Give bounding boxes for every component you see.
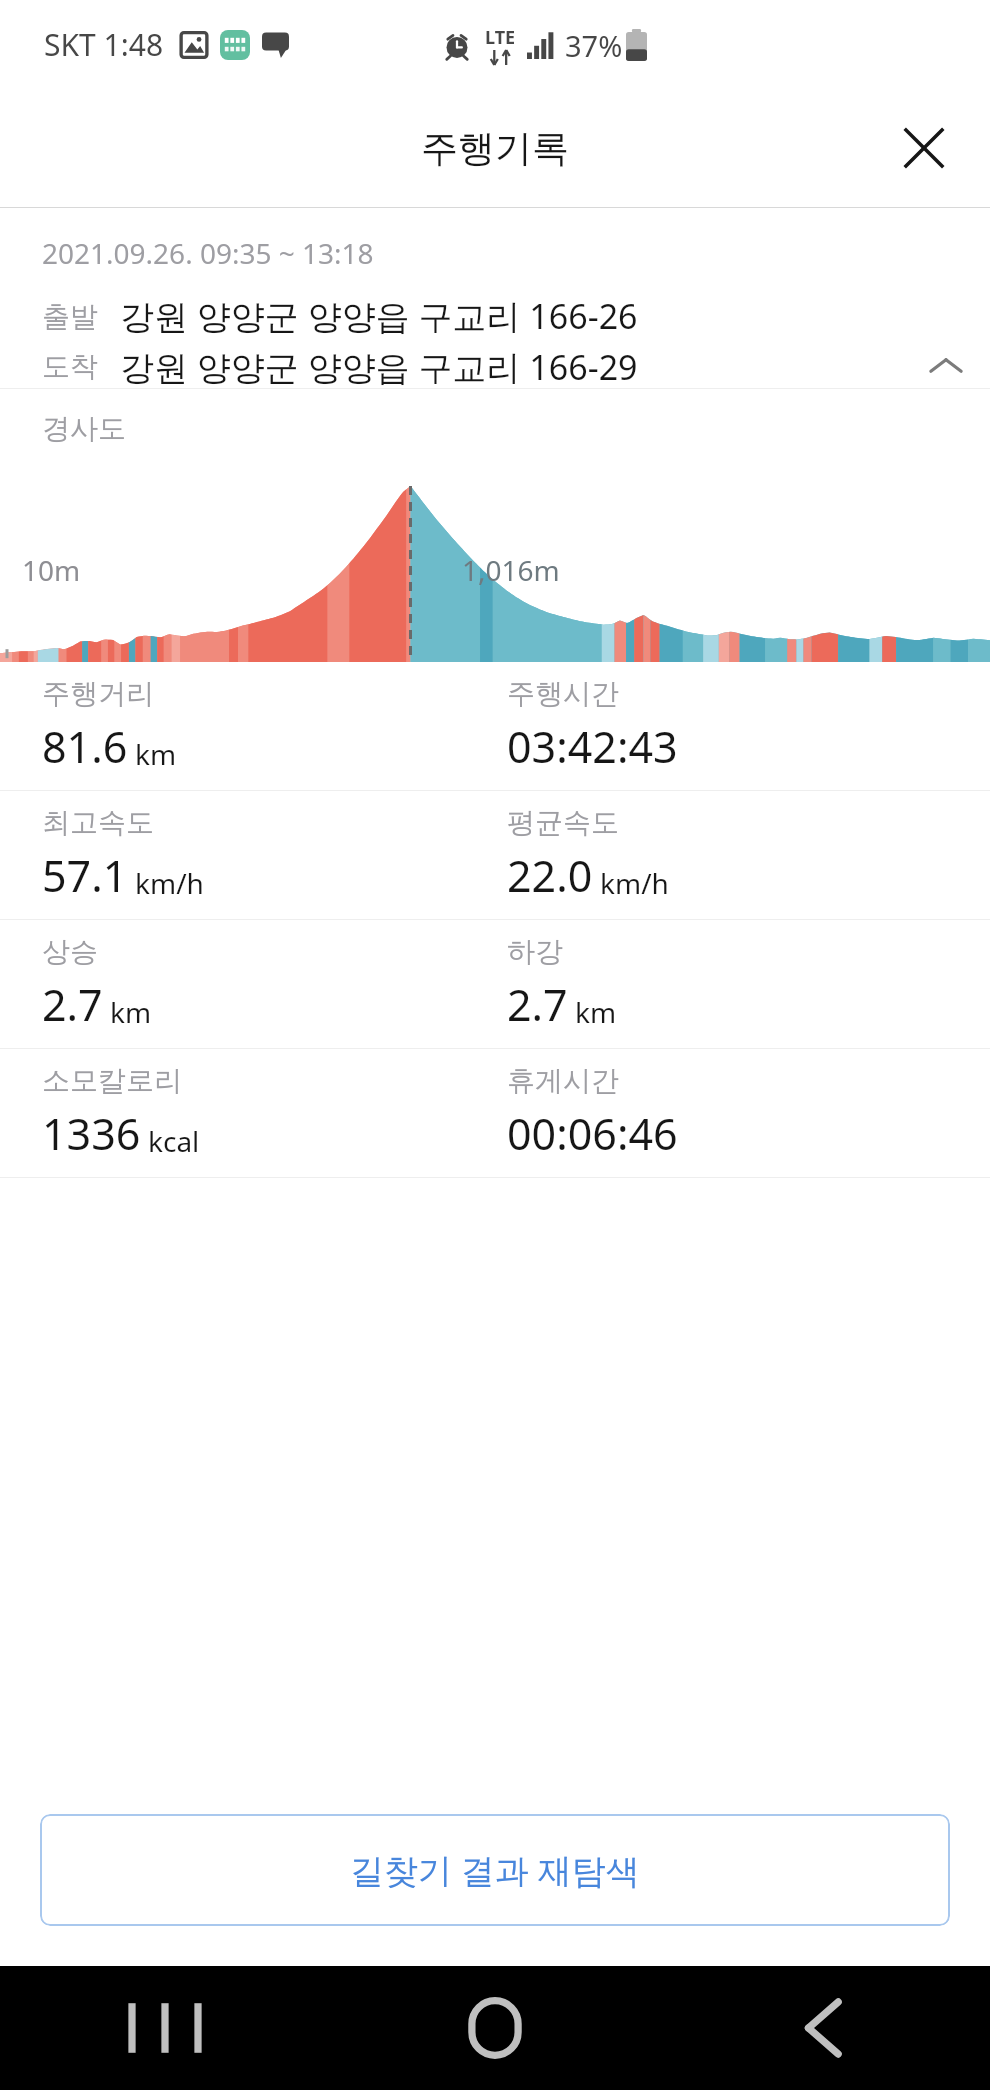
staticText: 길찾기 결과 재탐색 [350,1847,640,1893]
staticText: 22.0 [507,846,593,905]
staticText: 도착 [42,349,98,384]
staticText: LTE [485,25,516,50]
staticText: 상승 [42,934,98,969]
staticText: km [110,993,152,1031]
staticText: 주행시간 [507,676,619,711]
button[interactable]: 길찾기 결과 재탐색 [40,1814,950,1926]
staticText: 81.6 [42,717,128,776]
staticText: 하강 [507,934,563,969]
button[interactable]: 홈 [330,1966,660,2090]
staticText: 주행거리 [42,676,154,711]
staticText: 03:42:43 [507,717,678,776]
staticText: 1,016m [462,551,560,589]
staticText: kcal [148,1122,200,1160]
staticText: 경사도 [42,411,126,446]
staticText: 소모칼로리 [42,1063,182,1098]
staticText: 강원 양양군 양양읍 구교리 166-29 [120,344,638,388]
staticText: 10m [22,551,81,589]
staticText: km [135,735,177,773]
staticText: 출발 [42,299,98,334]
staticText: 최고속도 [42,805,154,840]
staticText: km/h [135,864,204,902]
button[interactable]: 2021.09.26. 09:35 ~ 13:18 [0,208,990,388]
button[interactable]: 최근 앱 [0,1966,330,2090]
staticText: 평균속도 [507,805,619,840]
staticText: 강원 양양군 양양읍 구교리 166-26 [120,293,638,339]
staticText: 2.7 [42,975,103,1034]
staticText: km/h [600,864,669,902]
staticText: 1336 [42,1104,141,1163]
staticText: 2021.09.26. 09:35 ~ 13:18 [42,234,374,272]
staticText: 37% [565,26,623,65]
staticText: 주행기록 [421,125,569,172]
staticText: 휴게시간 [507,1063,619,1098]
staticText: 00:06:46 [507,1104,678,1163]
staticText: 57.1 [42,846,128,905]
button[interactable]: 닫기 [884,108,964,188]
staticText: km [575,993,617,1031]
staticText: SKT 1:48 [44,24,164,65]
staticText: 2.7 [507,975,568,1034]
button[interactable]: 뒤로 [660,1966,990,2090]
